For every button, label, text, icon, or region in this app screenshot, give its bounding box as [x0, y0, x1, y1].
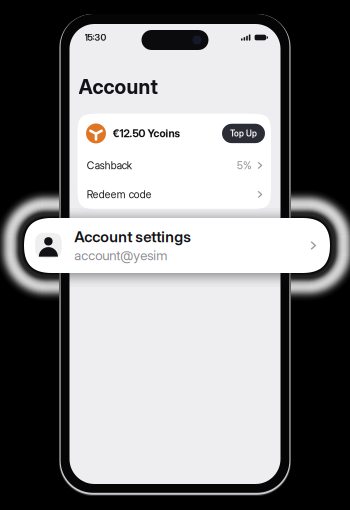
staticText: Cashback	[87, 159, 132, 172]
staticText: 15:30	[84, 32, 106, 43]
staticText: 5%	[237, 159, 252, 172]
button[interactable]: Top Up	[222, 124, 265, 143]
button[interactable]: Account settings	[24, 218, 330, 273]
staticText: €12.50 Ycoins	[112, 127, 180, 140]
staticText: Account settings	[74, 228, 191, 246]
staticText: Redeem code	[87, 188, 152, 201]
button[interactable]: Cashback	[77, 148, 271, 177]
button[interactable]: Redeem code	[77, 177, 271, 206]
staticText: Top Up	[230, 128, 257, 138]
staticText: Account	[78, 74, 157, 99]
staticText: account@yesim	[74, 247, 167, 263]
